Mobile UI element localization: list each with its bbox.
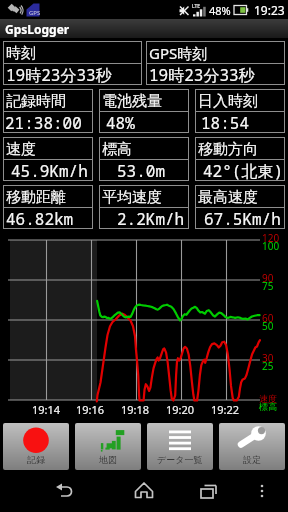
staticText: 53.0m <box>117 160 166 181</box>
staticText: 48% <box>106 112 135 133</box>
button[interactable]: 設定 <box>219 423 285 470</box>
button[interactable]: 速度 <box>3 137 93 181</box>
staticText: 設定 <box>243 454 261 465</box>
staticText: 19時23分33秒 <box>6 64 112 85</box>
button[interactable]: Home <box>127 474 161 508</box>
button[interactable]: 地図 <box>75 423 141 470</box>
staticText: 平均速度 <box>102 188 162 207</box>
staticText: 日入時刻 <box>198 92 258 111</box>
staticText: 67.5Km/h <box>204 208 281 229</box>
staticText: 速度 <box>259 393 277 404</box>
staticText: 2.2Km/h <box>117 208 185 229</box>
staticText: 42°(北東) <box>203 160 284 181</box>
staticText: 46.82km <box>6 208 74 229</box>
staticText: 75 <box>262 279 274 293</box>
staticText: 速度 <box>6 140 36 159</box>
staticText: 60 <box>262 311 274 325</box>
staticText: データ一覧 <box>157 454 203 465</box>
button[interactable]: More options <box>248 477 276 505</box>
button[interactable]: 移動距離 <box>3 185 93 229</box>
staticText: 移動距離 <box>6 188 66 207</box>
staticText: 19:22 <box>211 402 240 417</box>
button[interactable]: Back <box>48 474 82 508</box>
staticText: 19:18 <box>121 402 150 417</box>
staticText: 50 <box>262 319 274 333</box>
staticText: 電池残量 <box>102 92 162 111</box>
staticText: 19:23 <box>254 2 285 18</box>
staticText: 45.9Km/h <box>11 160 88 181</box>
button[interactable]: 移動方向 <box>195 137 285 181</box>
staticText: 25 <box>262 359 274 373</box>
staticText: GPS時刻 <box>149 43 208 63</box>
staticText: 標高 <box>102 140 132 159</box>
staticText: 記録時間 <box>6 92 66 111</box>
button[interactable]: 記録 <box>3 423 69 470</box>
staticText: GpsLogger <box>5 21 70 37</box>
staticText: 120 <box>262 231 280 245</box>
staticText: 時刻 <box>6 44 36 63</box>
staticText: 19:20 <box>166 402 195 417</box>
button[interactable]: 電池残量 <box>99 89 189 133</box>
button[interactable]: 日入時刻 <box>195 89 285 133</box>
staticText: 記録 <box>27 454 45 465</box>
staticText: LTE <box>192 3 201 10</box>
staticText: GPS <box>29 9 41 17</box>
button[interactable]: Recent apps <box>192 474 226 508</box>
button[interactable]: GPS時刻 <box>146 41 285 85</box>
staticText: 21:38:00 <box>5 112 82 133</box>
staticText: 90 <box>262 271 274 285</box>
staticText: 19時23分33秒 <box>149 64 255 85</box>
button[interactable]: 時刻 <box>3 41 142 85</box>
button[interactable]: 平均速度 <box>99 185 189 229</box>
staticText: 標高 <box>259 401 277 412</box>
button[interactable]: 最高速度 <box>195 185 285 229</box>
staticText: 移動方向 <box>198 140 258 159</box>
staticText: 最高速度 <box>198 188 258 207</box>
staticText: 18:54 <box>201 112 250 133</box>
staticText: 19:14 <box>32 402 61 417</box>
staticText: 100 <box>262 239 280 253</box>
staticText: 地図 <box>99 454 117 465</box>
button[interactable]: データ一覧 <box>147 423 213 470</box>
staticText: 48% <box>209 3 231 18</box>
button[interactable]: 記録時間 <box>3 89 93 133</box>
staticText: 19:16 <box>76 402 105 417</box>
staticText: 30 <box>262 351 274 365</box>
button[interactable]: 標高 <box>99 137 189 181</box>
